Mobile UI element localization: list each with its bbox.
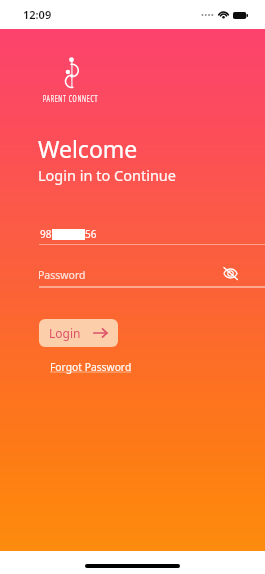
staticText: Password (38, 268, 86, 282)
staticText: Login in to Continue (38, 165, 176, 185)
staticText: Login (49, 325, 81, 341)
staticText: 12:09 (23, 7, 52, 22)
staticText: 98 (40, 227, 52, 241)
staticText: Welcome (38, 133, 138, 164)
staticText: PARENT CONNECT (43, 92, 98, 105)
button[interactable]: Forgot Password (50, 360, 132, 374)
button[interactable]: Login (39, 319, 118, 347)
button[interactable]: Show password (219, 262, 242, 285)
staticText: 56 (85, 227, 97, 241)
